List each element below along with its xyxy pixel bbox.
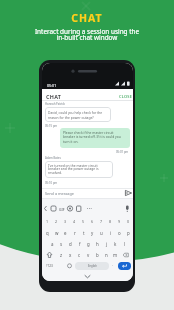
staticText: p — [127, 230, 130, 236]
staticText: k — [114, 241, 117, 247]
staticText: x — [69, 252, 72, 258]
button[interactable]: English — [75, 262, 109, 270]
button[interactable] — [118, 262, 131, 270]
staticText: Send a message — [45, 191, 74, 196]
staticText: h — [96, 241, 99, 247]
staticText: r — [74, 230, 76, 236]
staticText: . — [112, 262, 114, 267]
staticText: 05:01 pm — [116, 150, 129, 154]
staticText: u — [100, 230, 103, 236]
staticText: 9 — [118, 219, 121, 224]
staticText: a — [51, 241, 54, 247]
staticText: CHAT — [46, 93, 62, 100]
staticText: m — [113, 252, 118, 258]
staticText: f — [79, 241, 81, 247]
staticText: 0 — [127, 219, 130, 224]
button[interactable]: CLOSE — [119, 94, 133, 99]
staticText: ... — [87, 204, 93, 210]
staticText: 4 — [73, 219, 76, 224]
staticText: n — [105, 252, 108, 258]
staticText: 2 — [55, 219, 58, 224]
staticText: Hannah Patrick — [45, 102, 66, 106]
staticText: ?123 — [46, 264, 53, 268]
staticText: 7 — [100, 219, 103, 224]
staticText: g — [87, 241, 90, 247]
staticText: 6 — [91, 219, 94, 224]
staticText: w — [55, 230, 59, 236]
staticText: 3 — [64, 219, 67, 224]
staticText: z — [60, 252, 63, 258]
staticText: y — [91, 230, 94, 236]
staticText: o — [118, 230, 121, 236]
staticText: e — [64, 230, 67, 236]
staticText: t — [83, 230, 85, 236]
staticText: s — [60, 241, 63, 247]
staticText: David, could you help check for the reas… — [48, 110, 103, 120]
staticText: 8 — [109, 219, 112, 224]
button[interactable] — [125, 190, 132, 196]
staticText: English — [88, 264, 97, 268]
staticText: CHAT — [0, 11, 174, 25]
staticText: Interact during a session using the in-b… — [0, 27, 174, 42]
staticText: c — [78, 252, 81, 258]
staticText: l — [124, 241, 126, 247]
staticText: 1 — [46, 219, 49, 224]
staticText: 05:15 pm — [45, 124, 58, 128]
staticText: q — [46, 230, 49, 236]
staticText: 05:10 pm — [45, 181, 58, 185]
staticText: Please check if the master circuit break… — [63, 130, 121, 143]
staticText: b — [96, 252, 99, 258]
staticText: v — [87, 252, 90, 258]
staticText: d — [69, 241, 72, 247]
staticText: 5 — [82, 219, 85, 224]
staticText: j — [106, 241, 108, 247]
staticText: Adam Bates — [45, 156, 61, 160]
staticText: I've turned on the master circuit breake… — [48, 163, 99, 175]
staticText: GIF — [59, 207, 65, 212]
staticText: 05:01 — [47, 83, 57, 88]
staticText: i — [110, 230, 112, 236]
